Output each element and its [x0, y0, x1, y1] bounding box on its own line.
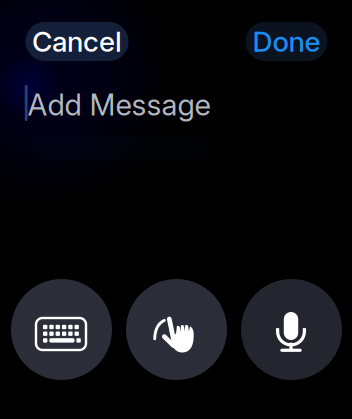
staticText: Cancel [32, 25, 122, 58]
button[interactable]: Keyboard [11, 279, 112, 380]
staticText: Add Message [28, 87, 211, 122]
staticText: Done [252, 25, 320, 58]
button[interactable]: Scribble [126, 279, 227, 380]
button[interactable]: Done [245, 22, 327, 61]
button[interactable]: Cancel [25, 22, 128, 61]
button[interactable]: Dictate [241, 279, 342, 380]
